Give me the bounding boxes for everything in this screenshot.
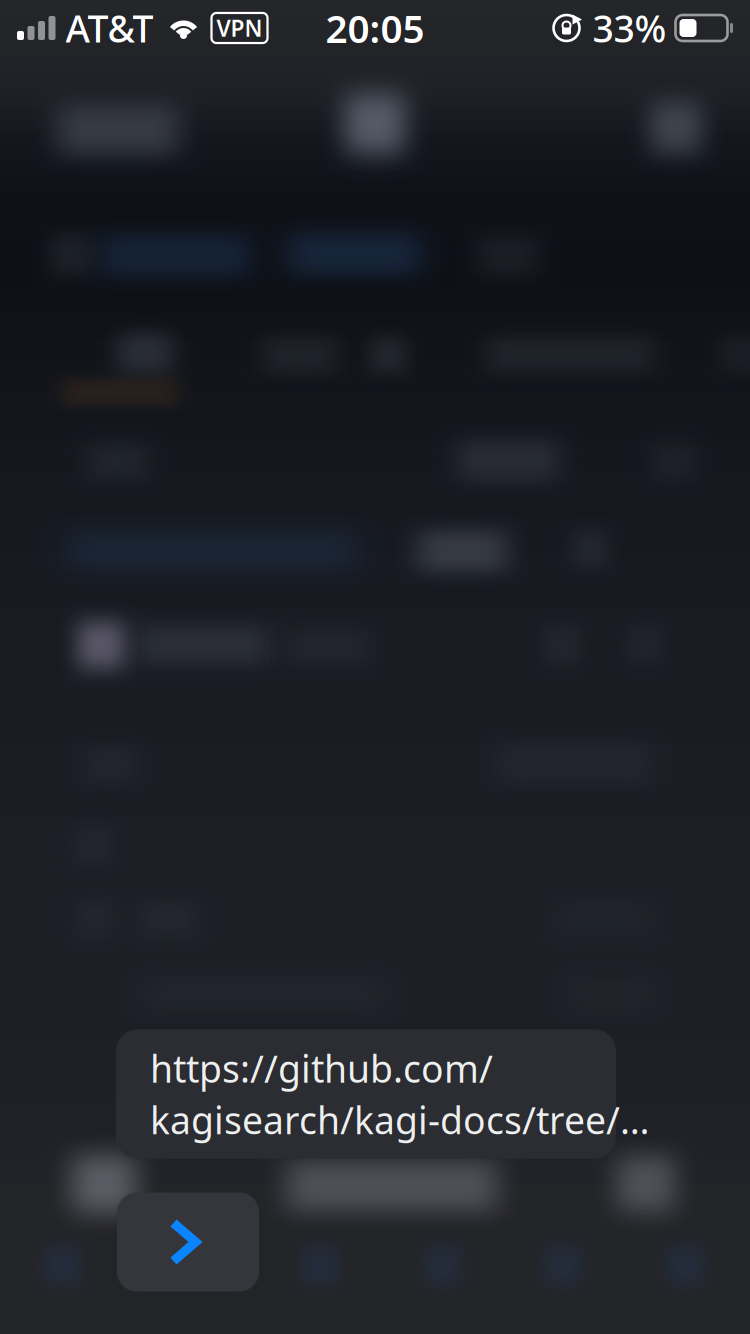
staticText: AT&T — [65, 3, 153, 53]
staticText: VPN — [216, 13, 262, 43]
staticText: kagisearch/kagi-docs/tree/… — [150, 1095, 650, 1145]
button[interactable]: Forward — [117, 1192, 259, 1291]
staticText: 20:05 — [325, 2, 424, 54]
staticText: https://github.com/ — [150, 1043, 493, 1093]
staticText: 33% — [592, 3, 666, 53]
